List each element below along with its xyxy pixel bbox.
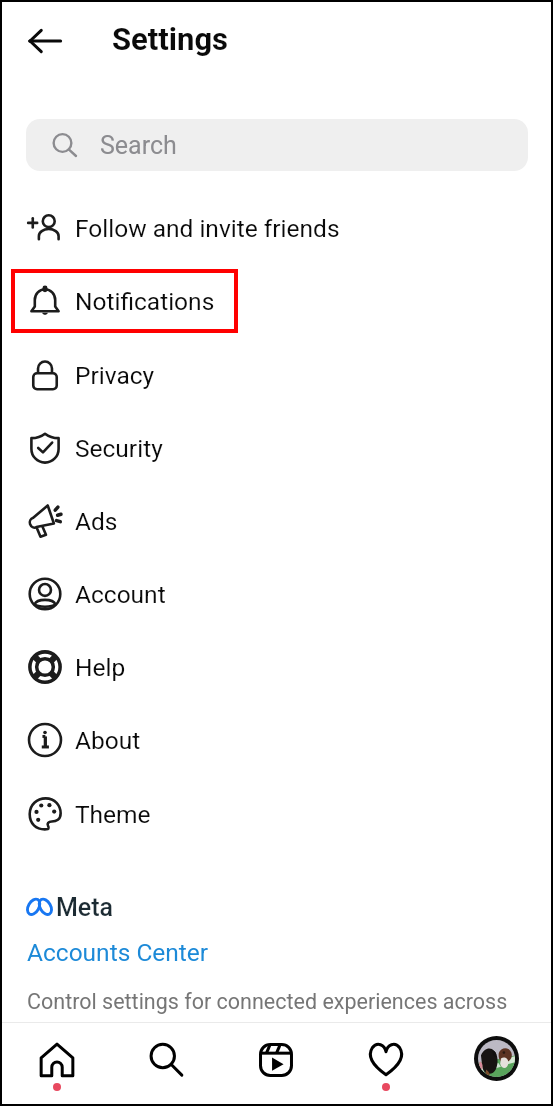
button[interactable]: Back [21, 17, 69, 65]
button[interactable]: Ads [2, 486, 551, 556]
button[interactable]: Follow and invite friends [2, 193, 551, 263]
button[interactable]: Accounts Center [27, 938, 209, 967]
staticText: Control settings for connected experienc… [27, 989, 508, 1014]
staticText: Follow and invite friends [75, 214, 340, 243]
staticText: Help [75, 653, 126, 682]
staticText: Security [75, 434, 163, 463]
staticText: About [75, 726, 141, 755]
button[interactable]: Help [2, 632, 551, 702]
button[interactable]: Theme [2, 779, 551, 849]
staticText: Account [75, 580, 166, 609]
button[interactable]: Activity [331, 1025, 441, 1104]
staticText: Ads [75, 507, 118, 536]
button[interactable]: Security [2, 413, 551, 483]
staticText: Theme [75, 800, 151, 829]
staticText: Settings [112, 21, 229, 57]
staticText: Search [100, 131, 177, 160]
button[interactable]: Notifications [2, 266, 551, 336]
button[interactable]: Home [2, 1025, 111, 1104]
button[interactable]: Search [26, 119, 528, 171]
button[interactable]: Privacy [2, 340, 551, 410]
button[interactable]: Profile [441, 1025, 551, 1104]
staticText: Notifications [75, 287, 215, 316]
button[interactable]: Account [2, 559, 551, 629]
button[interactable]: Reels [221, 1025, 331, 1104]
staticText: Privacy [75, 361, 155, 390]
button[interactable]: Search [111, 1025, 221, 1104]
button[interactable]: About [2, 705, 551, 775]
staticText: Meta [56, 893, 114, 922]
